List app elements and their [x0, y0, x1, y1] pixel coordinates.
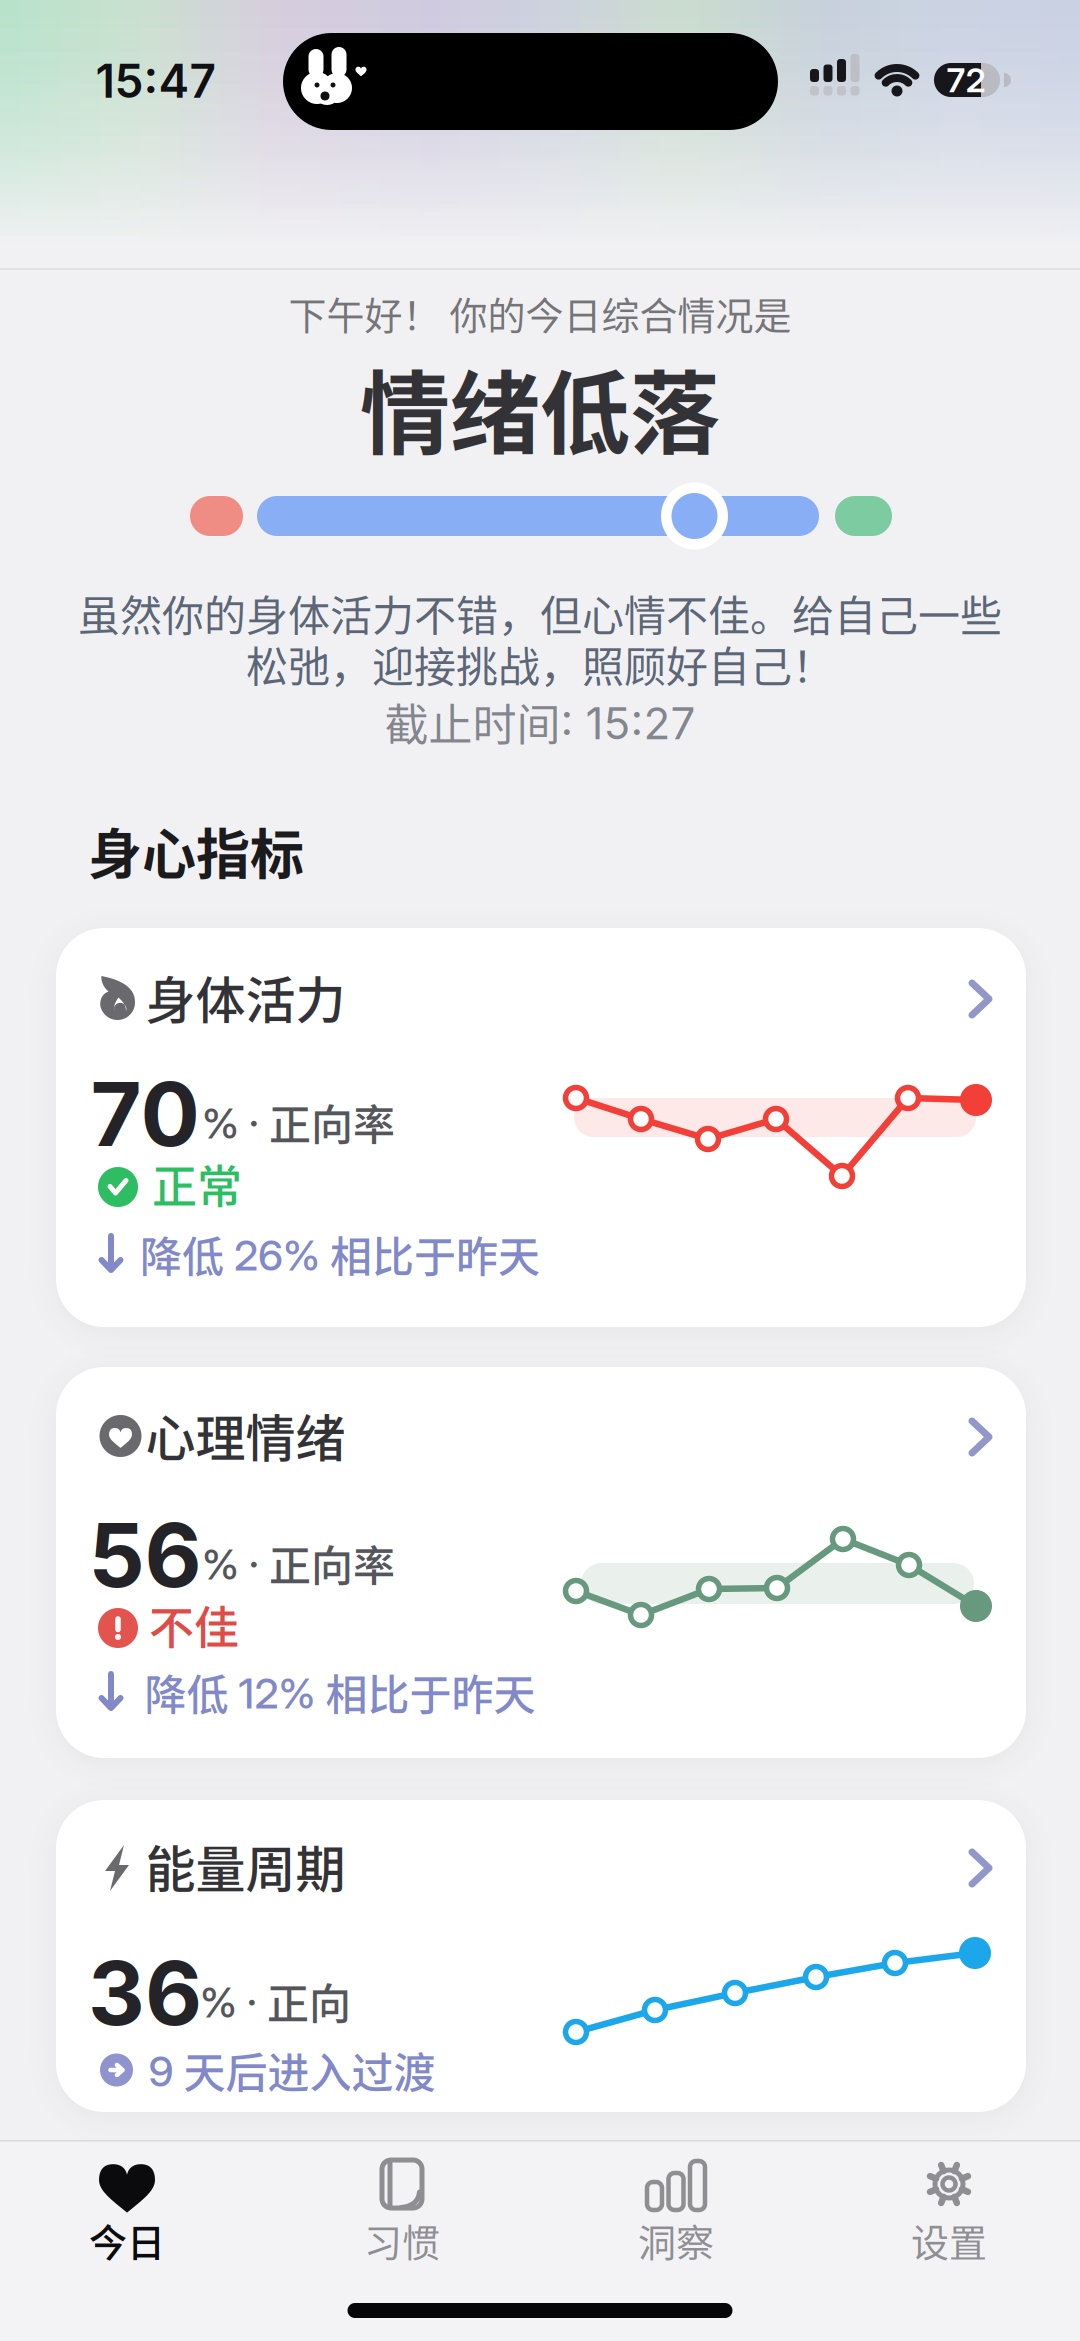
staticText: 72: [946, 59, 985, 100]
staticText: 今日: [89, 2212, 165, 2267]
staticText: 洞察: [638, 2212, 714, 2267]
staticText: 心理情绪: [145, 1399, 345, 1471]
staticText: % · 正向: [200, 1971, 351, 2031]
staticText: 36: [88, 1940, 202, 2046]
staticText: 降低 12% 相比于昨天: [144, 1662, 535, 1722]
staticText: 70: [90, 1061, 199, 1167]
staticText: 习惯: [364, 2212, 440, 2267]
button[interactable]: 洞察: [541, 2140, 811, 2320]
button[interactable]: 习惯: [267, 2140, 537, 2320]
button[interactable]: 身体活力: [56, 928, 1026, 1327]
staticText: % · 正向率: [202, 1533, 395, 1593]
staticText: 56: [88, 1502, 201, 1608]
staticText: 设置: [911, 2212, 987, 2267]
button[interactable]: 能量周期: [56, 1800, 1026, 2112]
button[interactable]: 心理情绪: [56, 1367, 1026, 1758]
button[interactable]: 设置: [814, 2140, 1080, 2320]
staticText: 9 天后进入过渡: [148, 2040, 435, 2100]
staticText: % · 正向率: [202, 1092, 395, 1152]
staticText: 正常: [152, 1151, 242, 1217]
staticText: 能量周期: [145, 1830, 345, 1902]
staticText: 虽然你的身体活力不错，但心情不佳。给自己一些: [78, 583, 1002, 643]
staticText: 松弛，迎接挑战，照顾好自己！: [246, 634, 834, 694]
staticText: 降低 26% 相比于昨天: [140, 1224, 540, 1284]
staticText: 身体活力: [145, 961, 345, 1033]
staticText: 15:47: [95, 53, 216, 109]
staticText: 下午好！ 你的今日综合情况是: [288, 285, 791, 340]
staticText: 不佳: [149, 1592, 239, 1658]
staticText: 截止时间: 15:27: [384, 690, 695, 754]
staticText: 情绪低落: [360, 342, 720, 472]
staticText: 身心指标: [88, 812, 304, 890]
button[interactable]: 今日: [0, 2140, 262, 2320]
